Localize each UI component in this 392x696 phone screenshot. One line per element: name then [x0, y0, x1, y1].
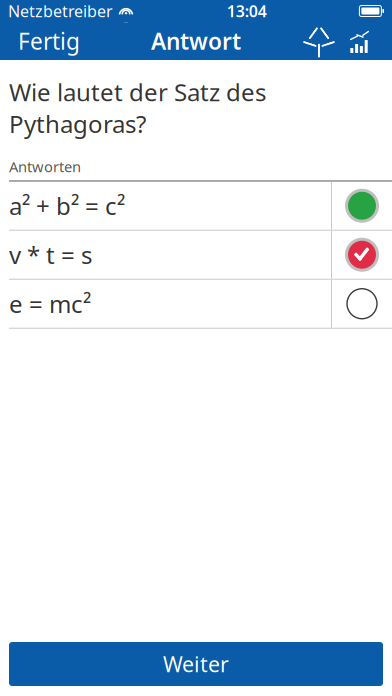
button[interactable]: Antwort markieren [332, 231, 392, 279]
staticText: e = mc² [9, 288, 91, 320]
button[interactable]: e = mc² [0, 280, 331, 328]
button[interactable]: Fertig [8, 18, 90, 64]
button[interactable]: Antwort markieren [332, 182, 392, 230]
staticText: Wie lautet der Satz des Pythagoras? [9, 76, 266, 140]
button[interactable]: Weiter [9, 642, 383, 686]
button[interactable]: Favorit [302, 24, 336, 58]
staticText: Antwort [151, 26, 241, 56]
staticText: a² + b² = c² [9, 190, 125, 222]
staticText: v * t = s [9, 239, 92, 271]
staticText: 13:04 [227, 0, 267, 22]
button[interactable]: v * t = s [0, 231, 331, 279]
staticText: Fertig [18, 26, 80, 56]
button[interactable]: a² + b² = c² [0, 182, 331, 230]
staticText: Antworten [9, 157, 81, 176]
staticText: Weiter [163, 650, 229, 678]
button[interactable]: Antwort markieren [332, 280, 392, 328]
button[interactable]: Statistik [342, 24, 376, 58]
staticText: Netzbetreiber [8, 0, 113, 22]
